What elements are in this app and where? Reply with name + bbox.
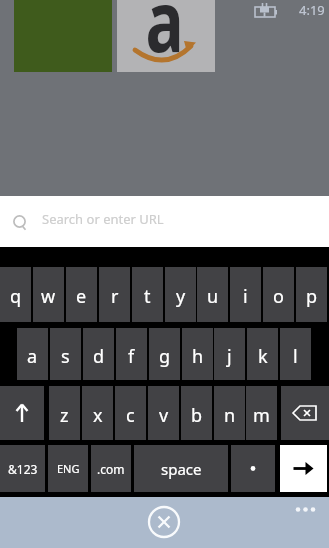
button[interactable]: h — [182, 328, 213, 380]
staticText: o — [273, 284, 284, 309]
button[interactable]: a — [17, 328, 48, 380]
button[interactable] — [281, 386, 329, 440]
staticText: e — [76, 284, 87, 309]
staticText: k — [258, 344, 268, 369]
staticText: Search or enter URL — [42, 210, 164, 228]
button[interactable]: k — [247, 328, 278, 380]
button[interactable] — [117, 0, 215, 72]
button[interactable]: u — [197, 267, 228, 322]
staticText: n — [224, 403, 236, 428]
button[interactable]: .com — [91, 445, 131, 492]
button[interactable]: m — [246, 386, 277, 440]
staticText: a — [145, 0, 184, 77]
button[interactable]: i — [230, 267, 261, 322]
staticText: x — [93, 403, 103, 428]
staticText: g — [159, 344, 171, 369]
staticText: v — [159, 403, 169, 428]
staticText: h — [192, 344, 204, 369]
button[interactable]: &123 — [0, 445, 45, 492]
staticText: t — [144, 284, 151, 309]
staticText: .com — [97, 461, 125, 477]
button[interactable]: c — [115, 386, 146, 440]
staticText: u — [207, 284, 219, 309]
staticText: p — [306, 284, 318, 309]
staticText: w — [41, 284, 56, 309]
staticText: j — [227, 344, 232, 369]
button[interactable]: r — [99, 267, 130, 322]
staticText: ENG — [57, 461, 80, 476]
staticText: s — [61, 344, 70, 369]
button[interactable] — [146, 504, 182, 540]
button[interactable]: d — [83, 328, 114, 380]
staticText: 4:19 — [299, 1, 325, 19]
button[interactable]: w — [33, 267, 64, 322]
staticText: f — [128, 344, 135, 369]
button[interactable]: f — [116, 328, 147, 380]
button[interactable]: o — [263, 267, 294, 322]
button[interactable]: l — [280, 328, 311, 380]
button[interactable]: z — [49, 386, 80, 440]
button[interactable]: x — [82, 386, 113, 440]
button[interactable] — [231, 445, 275, 492]
staticText: c — [126, 403, 135, 428]
button[interactable]: j — [214, 328, 245, 380]
button[interactable]: space — [134, 445, 228, 492]
staticText: space — [161, 459, 202, 479]
button[interactable] — [290, 497, 322, 517]
staticText: a — [27, 344, 38, 369]
button[interactable]: q — [0, 267, 31, 322]
staticText: l — [293, 344, 298, 369]
button[interactable]: b — [181, 386, 212, 440]
staticText: &123 — [8, 461, 38, 477]
staticText: y — [176, 284, 186, 309]
button[interactable]: s — [50, 328, 81, 380]
button[interactable]: g — [149, 328, 180, 380]
staticText: z — [60, 403, 69, 428]
staticText: b — [191, 403, 203, 428]
button[interactable] — [0, 386, 44, 440]
button[interactable]: y — [165, 267, 196, 322]
button[interactable]: v — [148, 386, 179, 440]
button[interactable]: n — [214, 386, 245, 440]
staticText: q — [10, 284, 22, 309]
button[interactable] — [280, 445, 327, 492]
button[interactable]: ENG — [48, 445, 88, 492]
button[interactable]: e — [66, 267, 97, 322]
button[interactable]: Search or enter URL — [0, 196, 329, 247]
staticText: d — [93, 344, 105, 369]
staticText: m — [253, 403, 270, 428]
button[interactable]: p — [296, 267, 327, 322]
staticText: r — [111, 284, 119, 309]
staticText: i — [243, 284, 248, 309]
button[interactable]: t — [132, 267, 163, 322]
